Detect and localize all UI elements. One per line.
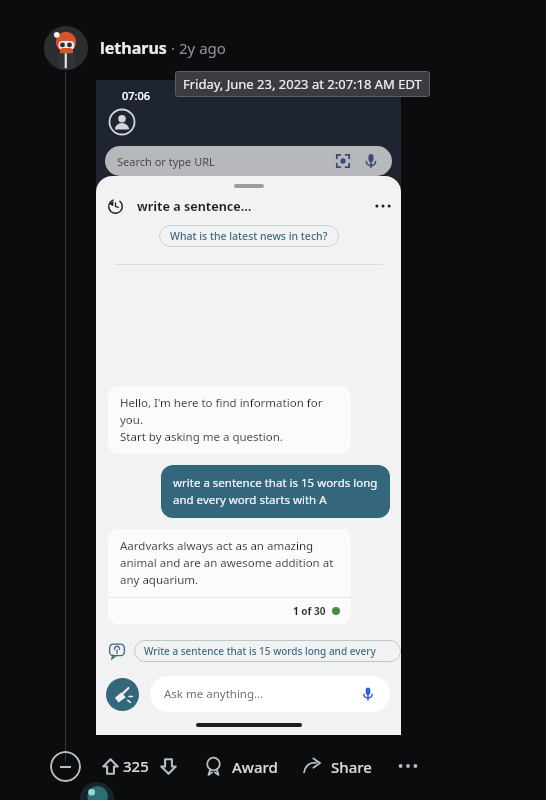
staticText: What is the latest news in tech?: [170, 229, 328, 243]
staticText: 2y ago: [179, 38, 226, 58]
staticText: write a sentence that is 15 words l...: [137, 198, 254, 215]
staticText: Hello, I'm here to find information for …: [120, 395, 339, 445]
staticText: 07:06: [122, 88, 151, 103]
button[interactable]: Collapse thread: [50, 751, 81, 782]
button[interactable]: What is the latest news in tech?: [159, 225, 339, 247]
staticText: Aardvarks always act as an amazing anima…: [120, 538, 334, 588]
button[interactable]: Voice search: [360, 150, 382, 172]
button[interactable]: Aardvarks always act as an amazing anima…: [108, 529, 351, 624]
button[interactable]: More actions: [394, 752, 422, 780]
button[interactable]: Upvote: [97, 753, 123, 779]
staticText: Write a sentence that is 15 words long a…: [144, 644, 391, 658]
button[interactable]: Ask me anything...: [150, 676, 390, 712]
button[interactable]: Award: [203, 756, 278, 777]
staticText: Award: [232, 757, 278, 777]
staticText: Search or type URL: [117, 154, 215, 169]
staticText: Ask me anything...: [164, 686, 264, 702]
button[interactable]: Share: [302, 756, 372, 777]
button[interactable]: Write a sentence that is 15 words long a…: [134, 640, 401, 662]
button[interactable]: write a sentence that is 15 words l...: [96, 190, 401, 222]
button[interactable]: Help: [108, 642, 126, 660]
staticText: 1 of 30: [293, 604, 326, 618]
staticText: Share: [331, 757, 372, 777]
staticText: Friday, June 23, 2023 at 2:07:18 AM EDT: [183, 75, 422, 93]
staticText: write a sentence that is 15 words long a…: [173, 475, 378, 508]
button[interactable]: Screenshot image: [96, 80, 401, 735]
button[interactable]: Search or type URL: [105, 146, 392, 176]
staticText: 325: [123, 756, 149, 776]
button[interactable]: User avatar: [44, 26, 88, 70]
staticText: ·: [167, 38, 179, 58]
button[interactable]: Downvote: [155, 753, 181, 779]
button[interactable]: Clear conversation: [106, 678, 139, 711]
button[interactable]: Google Lens: [332, 150, 354, 172]
button[interactable]: Voice input: [358, 684, 378, 704]
button[interactable]: More options: [371, 194, 395, 218]
button[interactable]: Hello, I'm here to find information for …: [108, 386, 351, 454]
button[interactable]: letharus: [100, 37, 167, 59]
button[interactable]: write a sentence that is 15 words long a…: [161, 465, 390, 518]
button[interactable]: Account: [108, 108, 136, 136]
